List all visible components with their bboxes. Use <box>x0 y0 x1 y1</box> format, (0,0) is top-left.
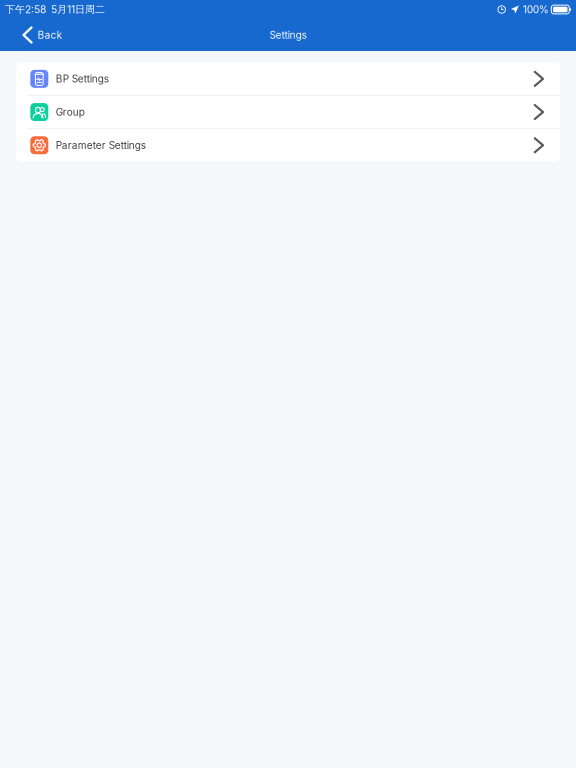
button[interactable]: BP Settings <box>16 63 560 95</box>
staticText: BP Settings <box>56 73 109 85</box>
staticText: Group <box>56 106 85 118</box>
staticText: 下午2:58 <box>5 3 46 16</box>
button[interactable]: Back <box>0 19 75 50</box>
button[interactable]: Group <box>16 96 560 128</box>
staticText: Parameter Settings <box>56 139 146 151</box>
staticText: 100% <box>523 3 549 16</box>
staticText: 5月11日周二 <box>51 3 105 16</box>
staticText: Settings <box>269 29 306 41</box>
staticText: Back <box>37 29 61 41</box>
button[interactable]: Parameter Settings <box>16 129 560 161</box>
